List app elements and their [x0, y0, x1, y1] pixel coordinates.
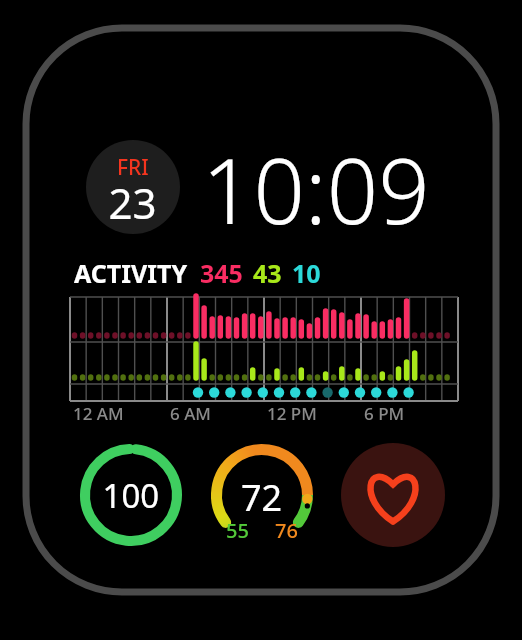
button[interactable]	[196, 132, 466, 228]
button[interactable]: Battery 100 percent	[77, 441, 185, 549]
button[interactable]: Activity chart	[0, 0, 522, 640]
button[interactable]: Calendar, Friday 23	[86, 140, 180, 234]
button[interactable]: Heart rate 72	[208, 441, 316, 549]
button[interactable]: Heart rate app	[339, 441, 447, 549]
